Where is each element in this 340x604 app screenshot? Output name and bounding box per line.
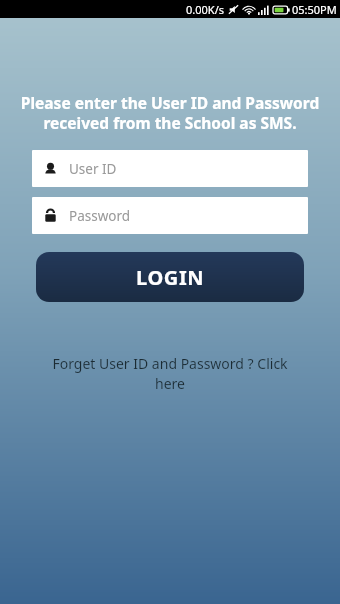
staticText: 0.00K/s bbox=[186, 2, 224, 17]
staticText: LOGIN bbox=[136, 264, 205, 291]
button[interactable]: LOGIN bbox=[36, 252, 304, 302]
staticText: Please enter the User ID and Password re… bbox=[12, 92, 328, 134]
staticText: User ID bbox=[69, 160, 117, 178]
button[interactable]: Forget User ID and Password ? Click here bbox=[30, 352, 310, 395]
staticText: Password bbox=[69, 207, 131, 225]
button[interactable]: Password bbox=[32, 197, 308, 234]
staticText: 05:50PM bbox=[292, 2, 337, 17]
button[interactable]: User ID bbox=[32, 150, 308, 187]
